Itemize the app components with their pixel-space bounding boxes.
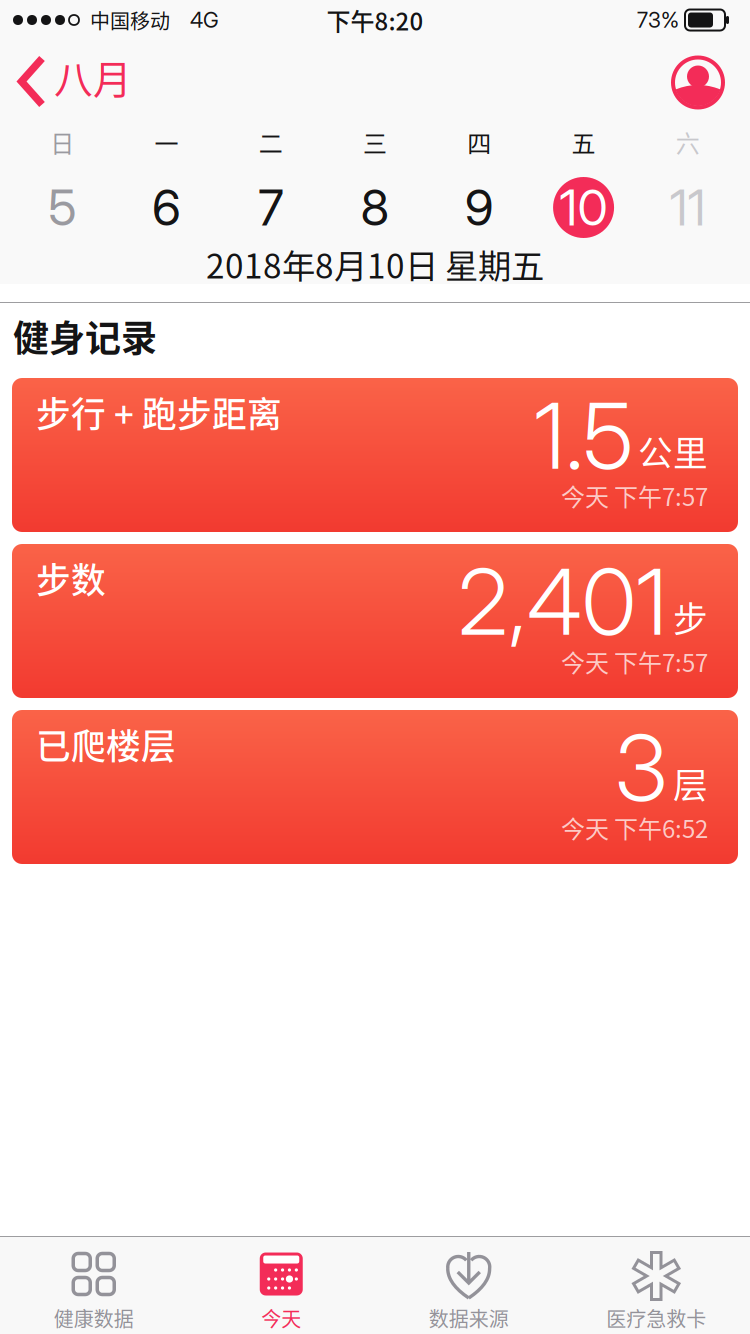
button[interactable]: 5 <box>10 177 114 238</box>
staticText: 11 <box>670 178 706 237</box>
button[interactable]: 已爬楼层 <box>12 710 738 864</box>
button[interactable]: 10 <box>531 177 636 238</box>
staticText: 六 <box>676 125 700 159</box>
staticText: 今天 下午6:52 <box>561 810 708 845</box>
button[interactable]: 11 <box>636 177 740 238</box>
staticText: 5 <box>48 178 76 237</box>
staticText: 公里 <box>638 426 708 476</box>
button[interactable]: 步行 + 跑步距离 <box>12 378 738 532</box>
staticText: 今天 <box>261 1303 301 1332</box>
staticText: 8 <box>360 178 389 237</box>
staticText: 健身记录 <box>13 310 157 362</box>
staticText: 八月 <box>54 49 132 105</box>
staticText: 健康数据 <box>54 1303 134 1332</box>
staticText: 医疗急救卡 <box>606 1303 706 1332</box>
staticText: 一 <box>154 125 178 159</box>
staticText: 日 <box>50 125 74 159</box>
staticText: 3 <box>615 713 667 823</box>
staticText: 步行 + 跑步距离 <box>36 387 282 437</box>
button[interactable]: 8 <box>323 177 427 238</box>
button[interactable]: 健康资料 <box>671 48 750 109</box>
staticText: 中国移动 <box>90 5 170 34</box>
staticText: 三 <box>363 125 387 159</box>
staticText: 步 <box>673 592 708 642</box>
staticText: 7 <box>258 178 283 237</box>
button[interactable]: 9 <box>427 177 531 238</box>
button[interactable]: 今天 <box>187 1237 375 1332</box>
staticText: 数据来源 <box>429 1303 509 1332</box>
staticText: 二 <box>259 125 283 159</box>
staticText: 2,401 <box>458 547 667 657</box>
staticText: 6 <box>152 178 181 237</box>
staticText: 4G <box>190 7 219 33</box>
staticText: 2018年8月10日 星期五 <box>206 240 544 288</box>
staticText: 1.5 <box>534 381 633 491</box>
button[interactable]: 7 <box>219 177 323 238</box>
button[interactable]: 健康数据 <box>0 1237 187 1332</box>
staticText: 今天 下午7:57 <box>561 644 708 679</box>
staticText: 下午8:20 <box>326 3 423 37</box>
staticText: 73% <box>637 7 679 33</box>
button[interactable]: 数据来源 <box>375 1237 562 1332</box>
staticText: 今天 下午7:57 <box>561 478 708 513</box>
staticText: 四 <box>467 125 491 159</box>
staticText: 五 <box>572 125 596 159</box>
staticText: 9 <box>465 178 494 237</box>
button[interactable]: 步数 <box>12 544 738 698</box>
staticText: 已爬楼层 <box>36 719 176 769</box>
button[interactable]: 医疗急救卡 <box>562 1237 750 1332</box>
staticText: 10 <box>560 178 608 237</box>
staticText: 步数 <box>36 553 106 603</box>
staticText: 层 <box>673 758 708 808</box>
button[interactable]: 6 <box>114 177 219 238</box>
button[interactable]: 八月 <box>0 51 132 107</box>
